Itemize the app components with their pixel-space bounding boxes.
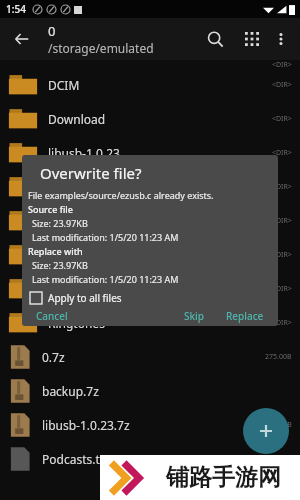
staticText: 275.00B xyxy=(265,352,292,362)
button[interactable]: View mode xyxy=(236,23,268,55)
staticText: Music xyxy=(48,213,81,229)
button[interactable]: Movies xyxy=(0,170,300,204)
staticText: <DIR> xyxy=(272,60,292,68)
staticText: 0 xyxy=(48,22,56,40)
staticText: <DIR> xyxy=(272,318,292,328)
staticText: Movies xyxy=(48,179,88,195)
staticText: <DIR> xyxy=(272,80,292,90)
button[interactable]: Pictures xyxy=(0,272,300,306)
button[interactable]: Apply to all files xyxy=(30,291,122,305)
staticText: /storage/emulated xyxy=(48,40,154,56)
button[interactable]: Add xyxy=(243,408,289,454)
staticText: Source file xyxy=(28,203,73,215)
button[interactable]: libusb-1.0.23 xyxy=(0,136,300,170)
staticText: Replace xyxy=(226,309,264,323)
staticText: 1:54 xyxy=(6,2,26,16)
staticText: libusb-1.0.23.7z xyxy=(42,417,130,433)
staticText: backup.7z xyxy=(42,383,99,399)
button[interactable]: Cancel xyxy=(36,309,68,323)
button[interactable]: Replace xyxy=(226,309,264,323)
staticText: 4KB xyxy=(279,420,292,430)
button[interactable]: Music xyxy=(0,204,300,238)
button[interactable]: More options xyxy=(266,24,296,54)
staticText: Ringtones xyxy=(48,315,105,331)
staticText: DCIM xyxy=(48,77,80,93)
staticText: File examples/source/ezusb.c already exi… xyxy=(28,189,214,201)
staticText: Apply to all files xyxy=(48,291,122,305)
staticText: <DIR> xyxy=(272,250,292,260)
button[interactable]: backup.7z xyxy=(0,374,300,408)
button[interactable]: DCIM xyxy=(0,68,300,102)
button[interactable]: Skip xyxy=(184,309,204,323)
staticText: Size: 23.97KB xyxy=(32,259,88,271)
staticText: <DIR> xyxy=(272,216,292,226)
button[interactable]: 0.7z xyxy=(0,340,300,374)
staticText: Size: 23.97KB xyxy=(32,217,88,229)
staticText: 铺路手游网 xyxy=(166,463,281,492)
button[interactable]: Download xyxy=(0,102,300,136)
button[interactable]: libusb-1.0.23.7z xyxy=(0,408,300,442)
staticText: <DIR> xyxy=(272,148,292,158)
staticText: Last modification: 1/5/20 11:23 AM xyxy=(32,231,179,243)
button[interactable]: Search xyxy=(198,22,232,56)
staticText: Notifications xyxy=(48,247,120,263)
staticText: Pictures xyxy=(48,281,94,297)
staticText: Cancel xyxy=(36,309,68,323)
button[interactable]: Ringtones xyxy=(0,306,300,340)
staticText: 0.7z xyxy=(42,349,65,365)
staticText: <DIR> xyxy=(272,284,292,294)
button[interactable]: Notifications xyxy=(0,238,300,272)
staticText: libusb-1.0.23 xyxy=(48,145,120,161)
staticText: Podcasts.txt xyxy=(42,451,111,467)
staticText: <DIR> xyxy=(272,182,292,192)
button[interactable]: Back xyxy=(4,21,40,57)
staticText: Replace with xyxy=(28,245,83,257)
staticText: Last modification: 1/5/20 11:23 AM xyxy=(32,273,179,285)
staticText: Overwrite file? xyxy=(40,163,142,183)
staticText: <DIR> xyxy=(272,114,292,124)
button[interactable]: Podcasts.txt xyxy=(0,442,300,476)
staticText: Skip xyxy=(184,309,204,323)
staticText: Download xyxy=(48,111,106,127)
